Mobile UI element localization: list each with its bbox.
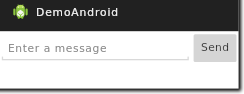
staticText: Enter a message — [8, 42, 108, 54]
staticText: Send — [201, 41, 230, 53]
staticText: DemoAndroid — [36, 6, 119, 18]
button[interactable]: Enter a message — [2, 38, 189, 60]
button[interactable]: Send — [194, 34, 237, 62]
other: App icon — [13, 4, 28, 19]
